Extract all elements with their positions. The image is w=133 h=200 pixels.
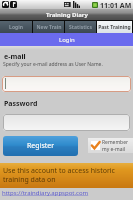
button[interactable] bbox=[3, 114, 130, 131]
button[interactable]: Past Training bbox=[97, 21, 132, 33]
staticText: Specify your e-mail address as User Name… bbox=[3, 61, 103, 68]
button[interactable]: Statistics bbox=[65, 21, 96, 33]
staticText: Statistics bbox=[69, 24, 92, 31]
staticText: New Train bbox=[36, 24, 62, 31]
staticText: e-mail bbox=[4, 52, 26, 62]
staticText: Training Diary bbox=[46, 11, 88, 19]
button[interactable]: New Train bbox=[33, 21, 64, 33]
staticText: Register bbox=[27, 141, 55, 151]
staticText: Remember my e-mail bbox=[102, 139, 129, 152]
staticText: Login bbox=[59, 36, 75, 44]
staticText: Login bbox=[9, 24, 23, 31]
button[interactable]: Remember my e-mail bbox=[88, 138, 133, 153]
staticText: 11:01 AM bbox=[100, 1, 132, 10]
staticText: Past Training bbox=[98, 24, 131, 31]
staticText: Password bbox=[4, 99, 38, 109]
button[interactable]: Register bbox=[3, 136, 78, 156]
button[interactable]: Login bbox=[0, 21, 32, 33]
button[interactable] bbox=[2, 76, 131, 92]
staticText: Use this account to access historic trai… bbox=[3, 166, 115, 184]
button[interactable]: https://traindiary.appspot.com bbox=[2, 189, 89, 197]
